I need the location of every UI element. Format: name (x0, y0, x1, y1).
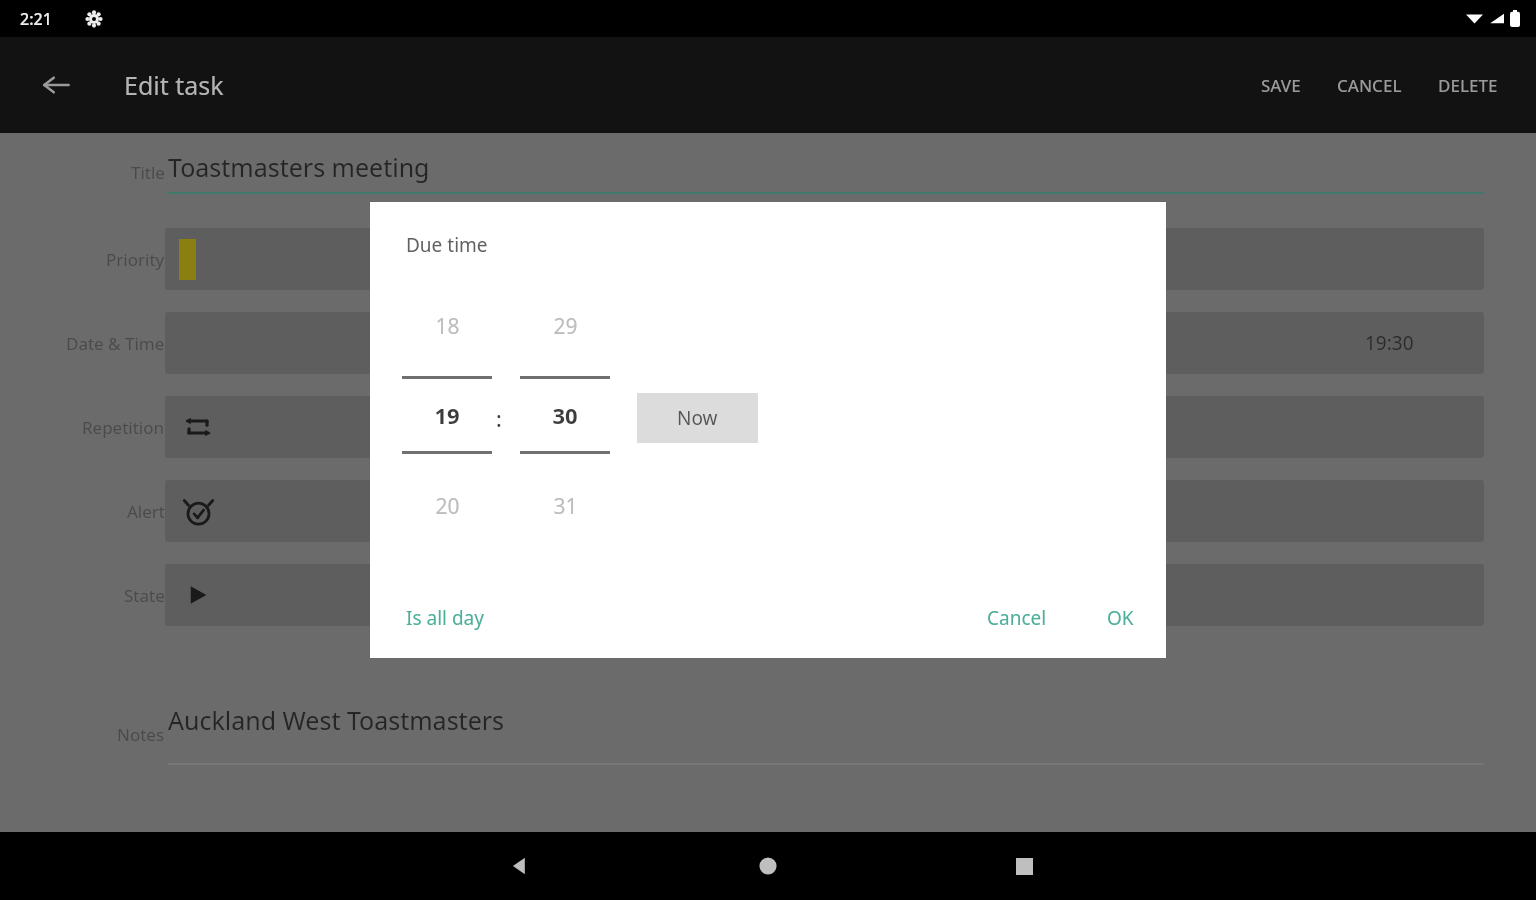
staticText: Edit task (124, 68, 224, 102)
staticText: Now (677, 405, 718, 431)
staticText: 18 (435, 312, 460, 341)
button[interactable]: SAVE (1243, 37, 1319, 133)
staticText: Notes (117, 723, 165, 746)
staticText: CANCEL (1337, 74, 1402, 97)
staticText: Title (131, 161, 165, 184)
staticText: Date & Time (66, 332, 165, 355)
staticText: 30 (552, 400, 578, 430)
staticText: : (496, 405, 502, 434)
staticText: Due time (406, 232, 488, 258)
button[interactable]: 30 (517, 400, 613, 430)
staticText: Repetition (82, 416, 165, 439)
button[interactable]: Back (492, 838, 548, 894)
button[interactable]: Cancel (973, 594, 1061, 642)
button[interactable]: 19 (399, 400, 495, 430)
staticText: 20 (435, 492, 460, 521)
button[interactable]: DELETE (1420, 37, 1516, 133)
button[interactable]: 18 (399, 312, 495, 341)
button[interactable] (165, 228, 1484, 290)
button[interactable] (165, 564, 1484, 626)
staticText: Is all day (406, 605, 484, 631)
button[interactable]: Is all day (394, 594, 496, 642)
staticText: DELETE (1438, 74, 1498, 97)
staticText: 2:21 (20, 8, 52, 30)
button[interactable] (165, 396, 1484, 458)
staticText: Cancel (987, 605, 1047, 631)
staticText: 31 (553, 492, 578, 521)
staticText: Auckland West Toastmasters (168, 703, 505, 737)
button[interactable]: Back (32, 61, 80, 109)
staticText: OK (1107, 605, 1134, 631)
button[interactable]: CANCEL (1319, 37, 1420, 133)
staticText: 29 (553, 312, 578, 341)
button[interactable]: Home (740, 838, 796, 894)
staticText: State (124, 584, 165, 607)
button[interactable]: Now (637, 393, 758, 443)
staticText: 19 (434, 400, 460, 430)
staticText: Alert (127, 500, 165, 523)
staticText: 19:30 (1365, 330, 1414, 356)
staticText: Toastmasters meeting (168, 150, 430, 184)
button[interactable] (165, 480, 1484, 542)
button[interactable]: Recent apps (996, 838, 1052, 894)
button[interactable]: 29 (517, 312, 613, 341)
staticText: Priority (106, 248, 165, 271)
button[interactable]: 31 (517, 492, 613, 521)
button[interactable]: OK (1093, 594, 1148, 642)
staticText: SAVE (1261, 74, 1301, 97)
button[interactable]: 19:30 (165, 312, 1484, 374)
button[interactable]: 20 (399, 492, 495, 521)
